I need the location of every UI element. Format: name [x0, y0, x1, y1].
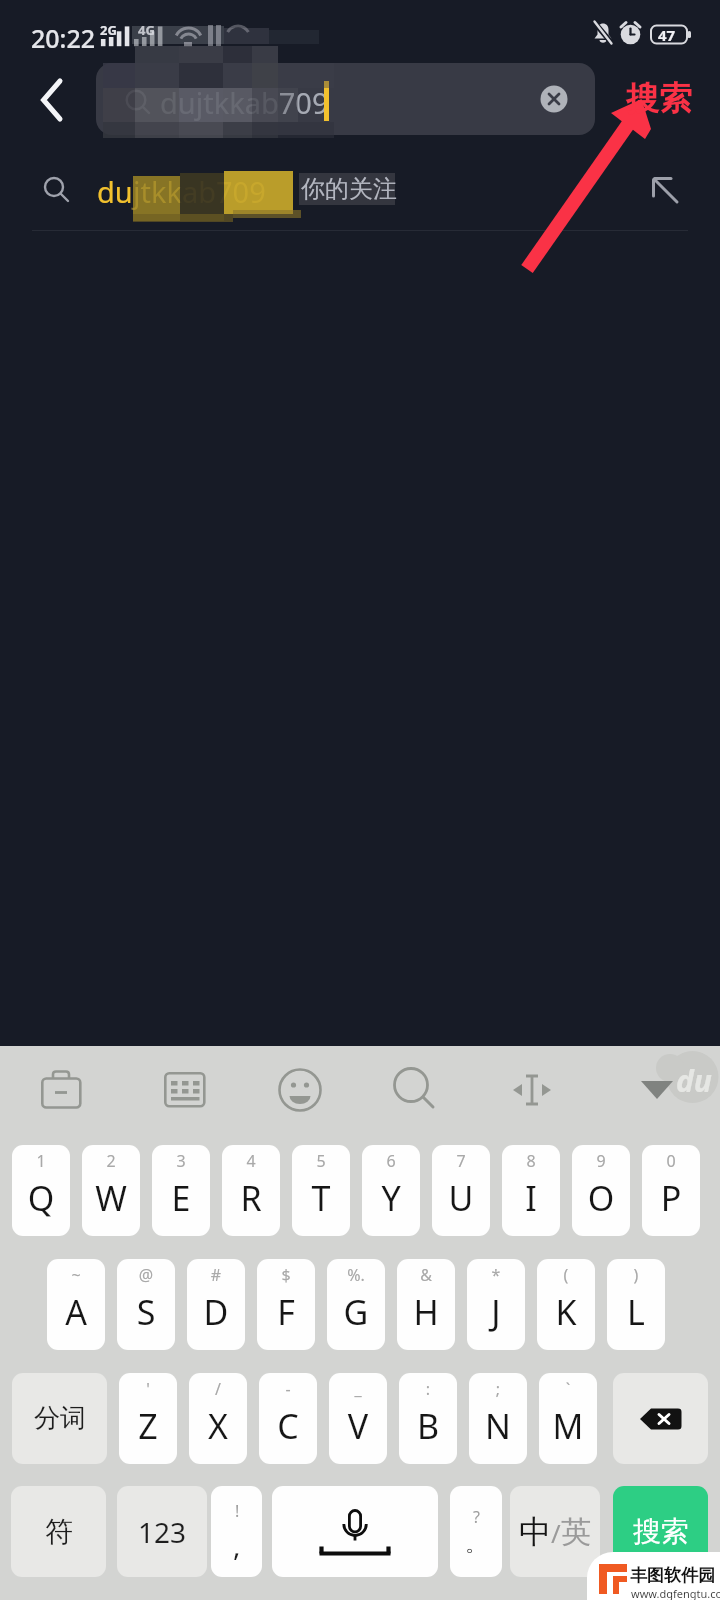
button[interactable]: ; [469, 1373, 527, 1464]
staticText: C [259, 1403, 317, 1449]
button[interactable]: dujtkkab709 [96, 63, 595, 135]
button[interactable]: ~ [47, 1259, 105, 1350]
button[interactable]: # [187, 1259, 245, 1350]
staticText: R [222, 1175, 280, 1221]
button[interactable]: du [0, 152, 720, 230]
button[interactable]: 中 [510, 1486, 600, 1577]
staticText: I [502, 1175, 560, 1221]
staticText: 中 [519, 1512, 551, 1552]
button[interactable]: 5 [292, 1145, 350, 1236]
button[interactable]: ( [537, 1259, 595, 1350]
button[interactable]: @ [117, 1259, 175, 1350]
staticText: Z [119, 1403, 177, 1449]
staticText: 0 [642, 1150, 700, 1172]
button[interactable]: 0 [642, 1145, 700, 1236]
button[interactable]: / [189, 1373, 247, 1464]
button[interactable]: $ [257, 1259, 315, 1350]
staticText: 。 [465, 1530, 487, 1558]
staticText: Y [362, 1175, 420, 1221]
staticText: $ [257, 1264, 315, 1286]
staticText: G [327, 1289, 385, 1335]
button[interactable]: 3 [152, 1145, 210, 1236]
button[interactable]: 4 [222, 1145, 280, 1236]
staticText: @ [117, 1264, 175, 1286]
staticText: ` [539, 1378, 597, 1400]
button[interactable]: & [397, 1259, 455, 1350]
staticText: 20:22 [31, 21, 96, 55]
staticText: 你的关注 [301, 174, 397, 204]
staticText: 符 [45, 1514, 73, 1549]
button[interactable]: Back [22, 69, 84, 131]
staticText: 分词 [34, 1402, 86, 1435]
staticText: : [399, 1378, 457, 1400]
staticText: 搜索 [633, 1514, 689, 1549]
staticText: 6 [362, 1150, 420, 1172]
staticText: B [399, 1403, 457, 1449]
staticText: # [187, 1264, 245, 1286]
staticText: 4 [222, 1150, 280, 1172]
staticText: E [152, 1175, 210, 1221]
staticText: 8 [502, 1150, 560, 1172]
staticText: L [607, 1289, 665, 1335]
button[interactable]: %. [327, 1259, 385, 1350]
button[interactable]: 1 [12, 1145, 70, 1236]
button[interactable]: Use suggestion [638, 163, 694, 219]
staticText: J [467, 1289, 525, 1335]
button[interactable]: ) [607, 1259, 665, 1350]
staticText: jtkkab709 [133, 172, 266, 211]
staticText: * [467, 1264, 525, 1286]
staticText: H [397, 1289, 455, 1335]
button[interactable]: 搜索 [613, 1486, 708, 1577]
button[interactable]: Clipboard [28, 1056, 96, 1124]
staticText: P [642, 1175, 700, 1221]
staticText: 123 [138, 1513, 187, 1551]
button[interactable]: * [467, 1259, 525, 1350]
button[interactable]: Emoji [266, 1056, 334, 1124]
button[interactable]: ? [450, 1486, 502, 1577]
button[interactable]: ` [539, 1373, 597, 1464]
staticText: O [572, 1175, 630, 1221]
staticText: du [97, 172, 133, 211]
staticText: 3 [152, 1150, 210, 1172]
staticText: ? [473, 1506, 480, 1528]
button[interactable]: Switch keyboard [151, 1056, 219, 1124]
button[interactable]: Backspace [613, 1373, 708, 1464]
staticText: - [259, 1378, 317, 1400]
staticText: ~ [47, 1264, 105, 1286]
button[interactable]: ! [211, 1486, 262, 1577]
staticText: 5 [292, 1150, 350, 1172]
button[interactable]: Clear text [534, 79, 574, 119]
button[interactable]: 8 [502, 1145, 560, 1236]
staticText: 1 [12, 1150, 70, 1172]
staticText: F [257, 1289, 315, 1335]
staticText: 9 [572, 1150, 630, 1172]
staticText: 2 [82, 1150, 140, 1172]
staticText: / [189, 1378, 247, 1400]
button[interactable]: ' [119, 1373, 177, 1464]
staticText: 英 [561, 1513, 591, 1551]
button[interactable]: Space [272, 1486, 438, 1577]
button[interactable]: 7 [432, 1145, 490, 1236]
staticText: N [469, 1403, 527, 1449]
staticText: U [432, 1175, 490, 1221]
staticText: du [676, 1060, 712, 1101]
staticText: Q [12, 1175, 70, 1221]
staticText: K [537, 1289, 595, 1335]
button[interactable]: Hide keyboard [623, 1056, 691, 1124]
staticText: X [189, 1403, 247, 1449]
button[interactable]: _ [329, 1373, 387, 1464]
staticText: %. [327, 1264, 385, 1286]
staticText: & [397, 1264, 455, 1286]
button[interactable]: 符 [11, 1486, 106, 1577]
staticText: T [292, 1175, 350, 1221]
button[interactable]: Move cursor [498, 1056, 566, 1124]
button[interactable]: 9 [572, 1145, 630, 1236]
button[interactable]: : [399, 1373, 457, 1464]
button[interactable]: 6 [362, 1145, 420, 1236]
button[interactable]: 123 [117, 1486, 207, 1577]
button[interactable]: Search [381, 1056, 449, 1124]
button[interactable]: 分词 [12, 1373, 107, 1464]
staticText: 7 [432, 1150, 490, 1172]
button[interactable]: - [259, 1373, 317, 1464]
button[interactable]: 2 [82, 1145, 140, 1236]
